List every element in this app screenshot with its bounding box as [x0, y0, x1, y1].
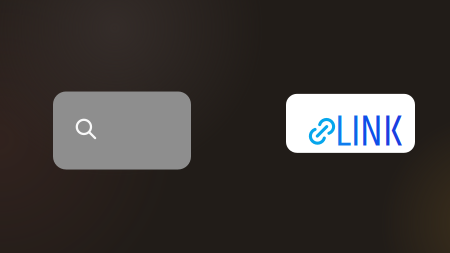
staticText: N	[360, 98, 383, 167]
staticText: L	[335, 98, 351, 167]
button[interactable]: L	[286, 101, 415, 160]
staticText: I	[351, 98, 360, 167]
button[interactable]: Search	[53, 91, 191, 169]
staticText: K	[383, 98, 403, 167]
